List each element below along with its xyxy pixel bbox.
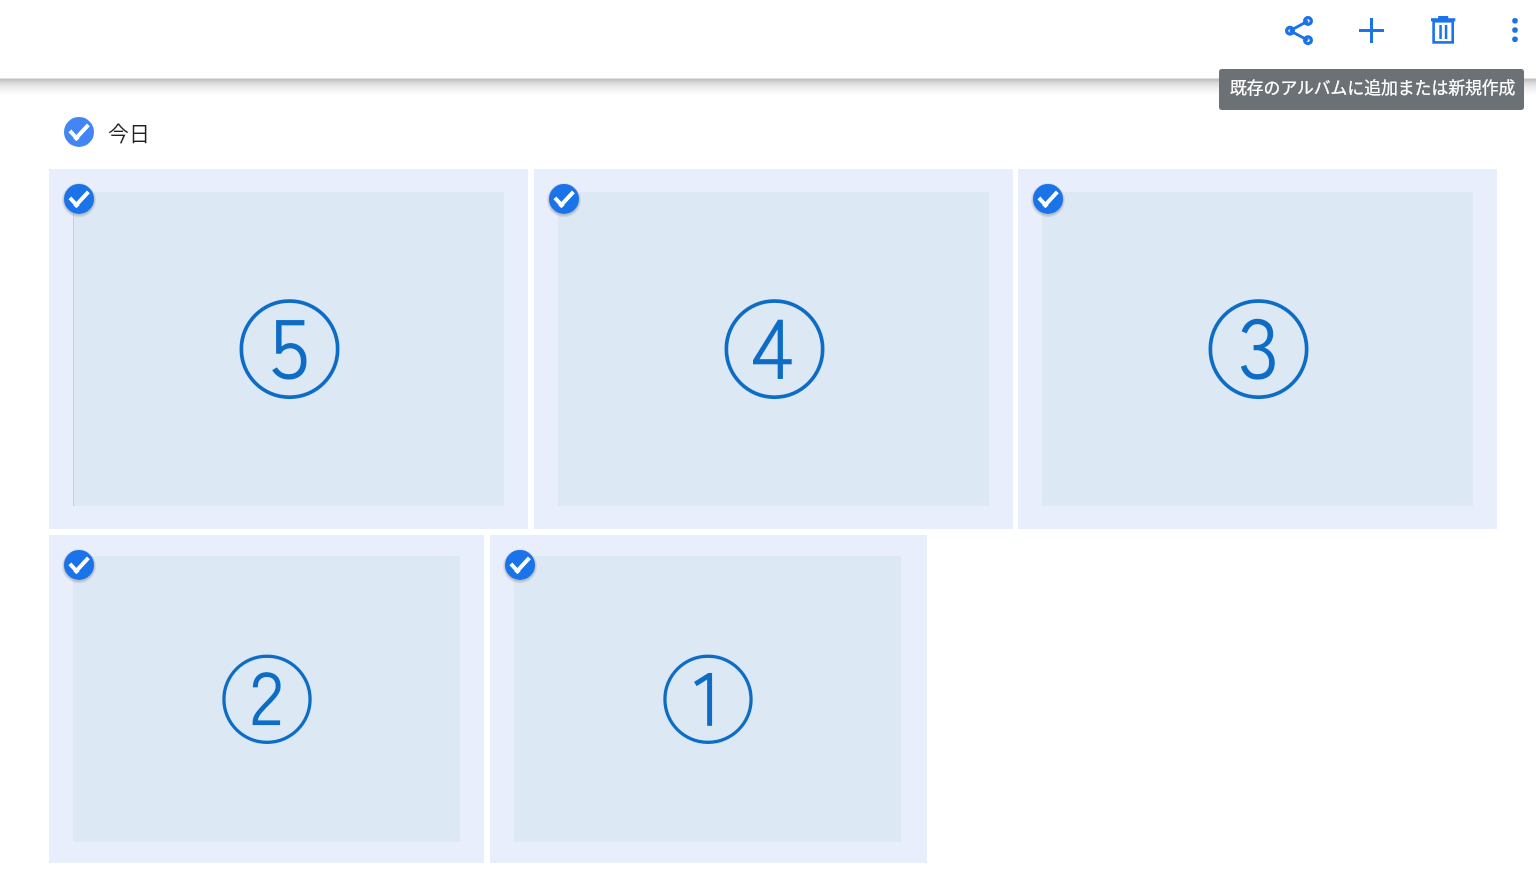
- button[interactable]: ⑤: [49, 169, 528, 529]
- staticText: 既存のアルバムに追加または新規作成: [1230, 75, 1516, 99]
- button[interactable]: 今日: [56, 109, 128, 155]
- staticText: ②: [220, 626, 315, 762]
- button[interactable]: Share: [1263, 0, 1335, 60]
- staticText: ③: [1206, 267, 1312, 419]
- staticText: ④: [722, 267, 828, 419]
- staticText: ①: [661, 626, 756, 762]
- button[interactable]: More options: [1479, 0, 1536, 60]
- button[interactable]: ④: [534, 169, 1013, 529]
- button[interactable]: ①: [490, 535, 927, 863]
- button[interactable]: ②: [49, 535, 484, 863]
- staticText: ⑤: [237, 267, 343, 419]
- button[interactable]: Add to album: [1335, 0, 1407, 60]
- button[interactable]: ③: [1018, 169, 1497, 529]
- button[interactable]: Delete: [1407, 0, 1479, 60]
- staticText: 今日: [108, 117, 150, 147]
